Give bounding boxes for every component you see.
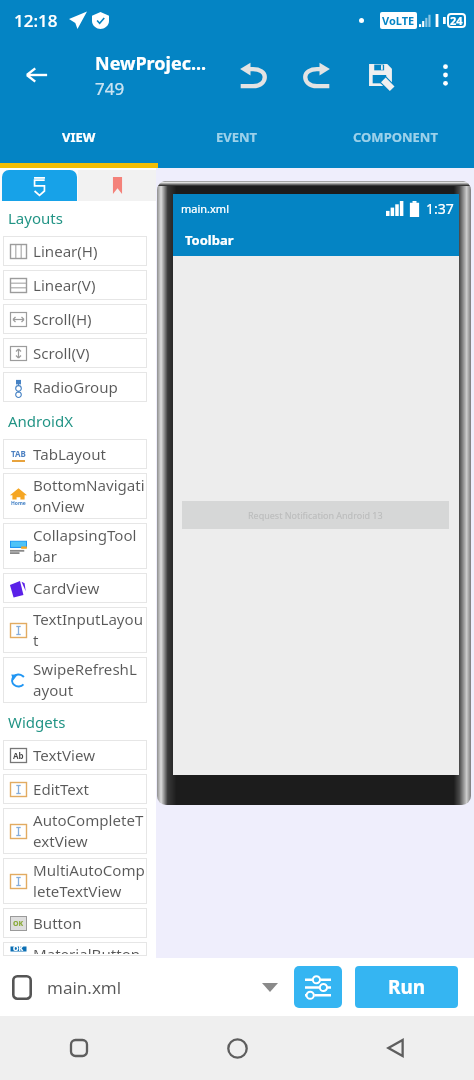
button[interactable]: Undo <box>228 40 278 110</box>
staticText: Request Notification Android 13 <box>248 509 383 521</box>
staticText: COMPONENT <box>353 128 438 146</box>
button[interactable]: Scroll(H) <box>3 304 147 334</box>
staticText: OK <box>13 944 24 954</box>
button[interactable]: EditText <box>3 774 147 804</box>
staticText: VIEW <box>62 128 96 146</box>
button[interactable]: MultiAutoCompleteTextView <box>3 858 147 904</box>
staticText: OK <box>13 919 24 929</box>
staticText: Ab <box>13 750 24 761</box>
staticText: 749 <box>95 77 125 100</box>
button[interactable]: Back <box>316 1016 474 1080</box>
button[interactable]: AutoCompleteTextView <box>3 808 147 854</box>
staticText: Button <box>33 913 82 934</box>
button[interactable]: Recents <box>0 1016 158 1080</box>
button[interactable]: Linear(H) <box>3 236 147 266</box>
button[interactable]: CardView <box>3 573 147 603</box>
staticText: BottomNavigationView <box>33 475 145 517</box>
staticText: VoLTE <box>382 13 415 28</box>
button[interactable]: main.xml <box>12 958 294 1016</box>
button[interactable]: Favorites <box>78 170 156 201</box>
staticText: MaterialButton <box>33 944 141 954</box>
staticText: TabLayout <box>33 444 106 465</box>
staticText: MultiAutoCompleteTextView <box>33 860 145 902</box>
button[interactable]: Project settings <box>294 966 342 1008</box>
button[interactable]: Redo <box>292 40 342 110</box>
button[interactable]: OK <box>3 908 147 938</box>
staticText: SwipeRefreshLayout <box>33 659 145 701</box>
staticText: main.xml <box>181 201 229 216</box>
staticText: Scroll(H) <box>33 309 92 330</box>
staticText: AutoCompleteTextView <box>33 810 145 852</box>
staticText: EditText <box>33 779 89 800</box>
button[interactable]: Run <box>355 966 458 1008</box>
staticText: CardView <box>33 578 100 599</box>
button[interactable]: Ab <box>3 740 147 770</box>
staticText: TextView <box>33 745 96 766</box>
button[interactable]: TextInputLayout <box>3 607 147 653</box>
staticText: Scroll(V) <box>33 343 90 364</box>
staticText: NewProjec... <box>95 51 207 76</box>
staticText: Widgets <box>8 712 66 732</box>
button[interactable]: RadioGroup <box>3 372 147 402</box>
button[interactable]: CollapsingToolbar <box>3 523 147 569</box>
button[interactable]: Home <box>3 473 147 519</box>
staticText: Run <box>388 974 426 1000</box>
button[interactable]: Linear(V) <box>3 270 147 300</box>
staticText: 24 <box>450 13 463 28</box>
staticText: Linear(V) <box>33 275 96 296</box>
button[interactable]: COMPONENT <box>316 110 474 163</box>
staticText: Layouts <box>8 208 63 228</box>
staticText: Toolbar <box>185 231 234 249</box>
button[interactable]: VIEW <box>0 110 158 163</box>
button[interactable]: More options <box>430 40 460 110</box>
button[interactable]: TAB <box>3 439 147 469</box>
button[interactable]: Widgets palette <box>2 170 77 201</box>
staticText: CollapsingToolbar <box>33 525 145 567</box>
staticText: 12:18 <box>14 9 58 32</box>
button[interactable]: SwipeRefreshLayout <box>3 657 147 703</box>
staticText: EVENT <box>216 128 258 146</box>
staticText: Home <box>11 500 26 507</box>
button[interactable]: Home <box>158 1016 316 1080</box>
staticText: Linear(H) <box>33 241 98 262</box>
button[interactable]: EVENT <box>158 110 316 163</box>
staticText: main.xml <box>47 976 122 999</box>
button[interactable]: Scroll(V) <box>3 338 147 368</box>
button[interactable]: Back <box>0 40 70 110</box>
staticText: RadioGroup <box>33 377 118 398</box>
button[interactable]: Save <box>356 40 406 110</box>
button[interactable]: OK <box>3 942 147 956</box>
staticText: AndroidX <box>8 411 73 431</box>
staticText: TextInputLayout <box>33 609 145 651</box>
staticText: TAB <box>11 448 26 459</box>
staticText: 1:37 <box>426 199 454 218</box>
